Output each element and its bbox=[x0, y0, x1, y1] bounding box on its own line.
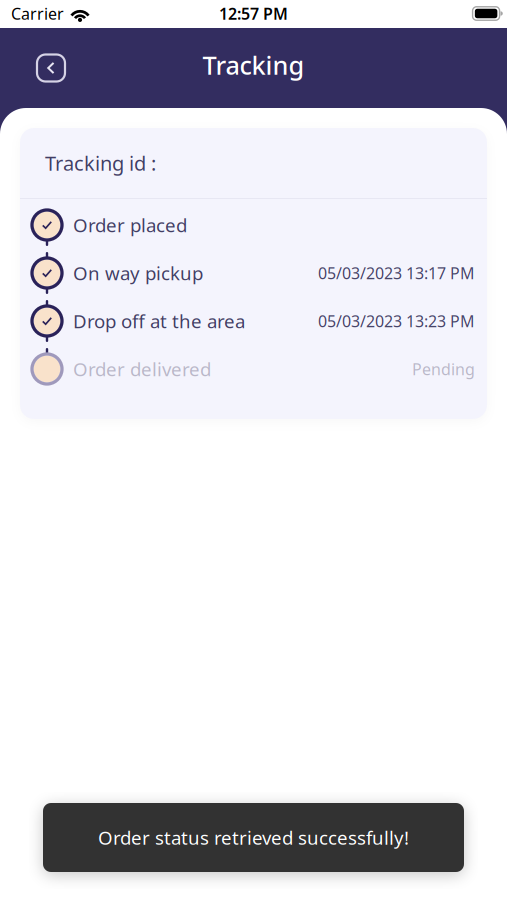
staticText: Pending bbox=[412, 358, 475, 380]
staticText: Tracking id : bbox=[45, 150, 156, 176]
staticText: Order placed bbox=[73, 213, 187, 237]
staticText: 05/03/2023 13:23 PM bbox=[318, 310, 475, 332]
button[interactable]: Back bbox=[31, 48, 71, 88]
staticText: Drop off at the area bbox=[73, 309, 245, 333]
staticText: 05/03/2023 13:17 PM bbox=[318, 262, 475, 284]
staticText: 12:57 PM bbox=[219, 3, 288, 24]
staticText: Order delivered bbox=[73, 357, 211, 381]
staticText: On way pickup bbox=[73, 261, 203, 285]
staticText: Carrier bbox=[11, 3, 64, 24]
staticText: Tracking bbox=[202, 48, 304, 82]
staticText: Order status retrieved successfully! bbox=[98, 825, 409, 850]
